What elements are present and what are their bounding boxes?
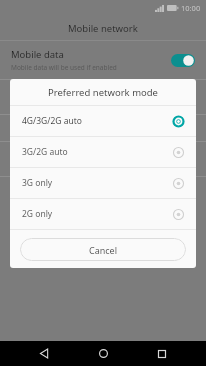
button[interactable]: 4G/3G/2G auto (10, 106, 196, 136)
staticText: Preferred network mode (11, 86, 116, 98)
staticText: Mobile data (11, 48, 64, 61)
staticText: 3G/2G auto (22, 146, 173, 158)
button[interactable]: 2G only (10, 199, 196, 229)
button[interactable]: Carrier (0, 142, 206, 176)
button[interactable]: Preferred network mode (0, 80, 206, 114)
button[interactable]: Cancel (20, 238, 186, 261)
staticText: Access Point Name (11, 122, 92, 134)
staticText: Mobile data will be used if enabled (11, 63, 117, 72)
staticText: 3G only (22, 177, 173, 189)
staticText: Carrier (11, 148, 41, 160)
staticText: Choose a network operator (11, 162, 95, 171)
button[interactable]: Access Point Name (0, 115, 206, 141)
button[interactable]: 3G/2G auto (10, 137, 196, 167)
staticText: 4G/3G/2G auto (22, 115, 173, 127)
staticText: Mobile network (68, 22, 138, 35)
staticText: Cancel (89, 244, 118, 256)
button[interactable]: Home (88, 341, 118, 366)
button[interactable]: 3G only (10, 168, 196, 198)
staticText: 2G only (22, 208, 173, 220)
staticText: Preferred network mode (48, 86, 158, 99)
button[interactable]: Back (29, 341, 59, 366)
button[interactable]: Mobile data (0, 41, 206, 79)
staticText: 4G/3G/2G auto (11, 100, 57, 109)
staticText: 10:00 (181, 3, 201, 13)
button[interactable]: Recents (147, 341, 177, 366)
